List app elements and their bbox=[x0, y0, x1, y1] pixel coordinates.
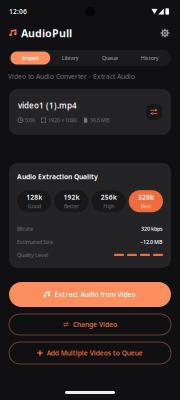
staticText: Library bbox=[62, 54, 79, 62]
staticText: Better bbox=[64, 203, 79, 210]
button[interactable]: Import bbox=[10, 51, 50, 64]
staticText: Extract Audio from Video bbox=[55, 290, 136, 299]
staticText: High bbox=[103, 203, 114, 210]
staticText: Estimated Size bbox=[17, 238, 53, 245]
button[interactable]: Change Video bbox=[9, 314, 171, 335]
staticText: Quality Level bbox=[17, 251, 48, 258]
staticText: Queue bbox=[102, 54, 118, 62]
staticText: 5:00 bbox=[25, 117, 35, 124]
staticText: 320k bbox=[138, 193, 154, 202]
staticText: ~12.0 MB bbox=[140, 238, 163, 245]
staticText: Change Video bbox=[73, 320, 117, 329]
staticText: Bitrate bbox=[17, 225, 33, 232]
staticText: Video to Audio Converter · Extract Audio bbox=[8, 72, 135, 81]
button[interactable]: 320k bbox=[129, 190, 163, 212]
button[interactable]: 256k bbox=[91, 190, 126, 212]
staticText: 12:06 bbox=[9, 7, 27, 16]
staticText: 192k bbox=[63, 193, 79, 202]
button[interactable]: 128k bbox=[17, 190, 51, 212]
staticText: 1920 × 1080 bbox=[48, 117, 77, 124]
button[interactable]: Swap video bbox=[146, 104, 162, 120]
staticText: Import bbox=[22, 54, 39, 62]
staticText: 256k bbox=[101, 193, 117, 202]
staticText: 320 kbps bbox=[141, 225, 163, 232]
staticText: History bbox=[141, 54, 159, 62]
staticText: 36.5 MB bbox=[90, 117, 109, 124]
staticText: Best bbox=[140, 203, 151, 210]
staticText: Add Multiple Videos to Queue bbox=[47, 349, 143, 357]
button[interactable]: Settings bbox=[158, 26, 172, 40]
staticText: 128k bbox=[26, 193, 42, 202]
button[interactable]: History bbox=[130, 51, 170, 64]
button[interactable]: Add Multiple Videos to Queue bbox=[9, 342, 171, 364]
staticText: video1 (1).mp4 bbox=[18, 100, 77, 111]
staticText: Audio Extraction Quality bbox=[17, 172, 98, 181]
button[interactable]: Extract Audio from Video bbox=[9, 282, 171, 307]
staticText: Good bbox=[28, 203, 41, 210]
button[interactable]: Library bbox=[50, 51, 90, 64]
button[interactable]: 192k bbox=[54, 190, 88, 212]
staticText: AudioPull bbox=[21, 26, 72, 40]
button[interactable]: Queue bbox=[90, 51, 130, 64]
